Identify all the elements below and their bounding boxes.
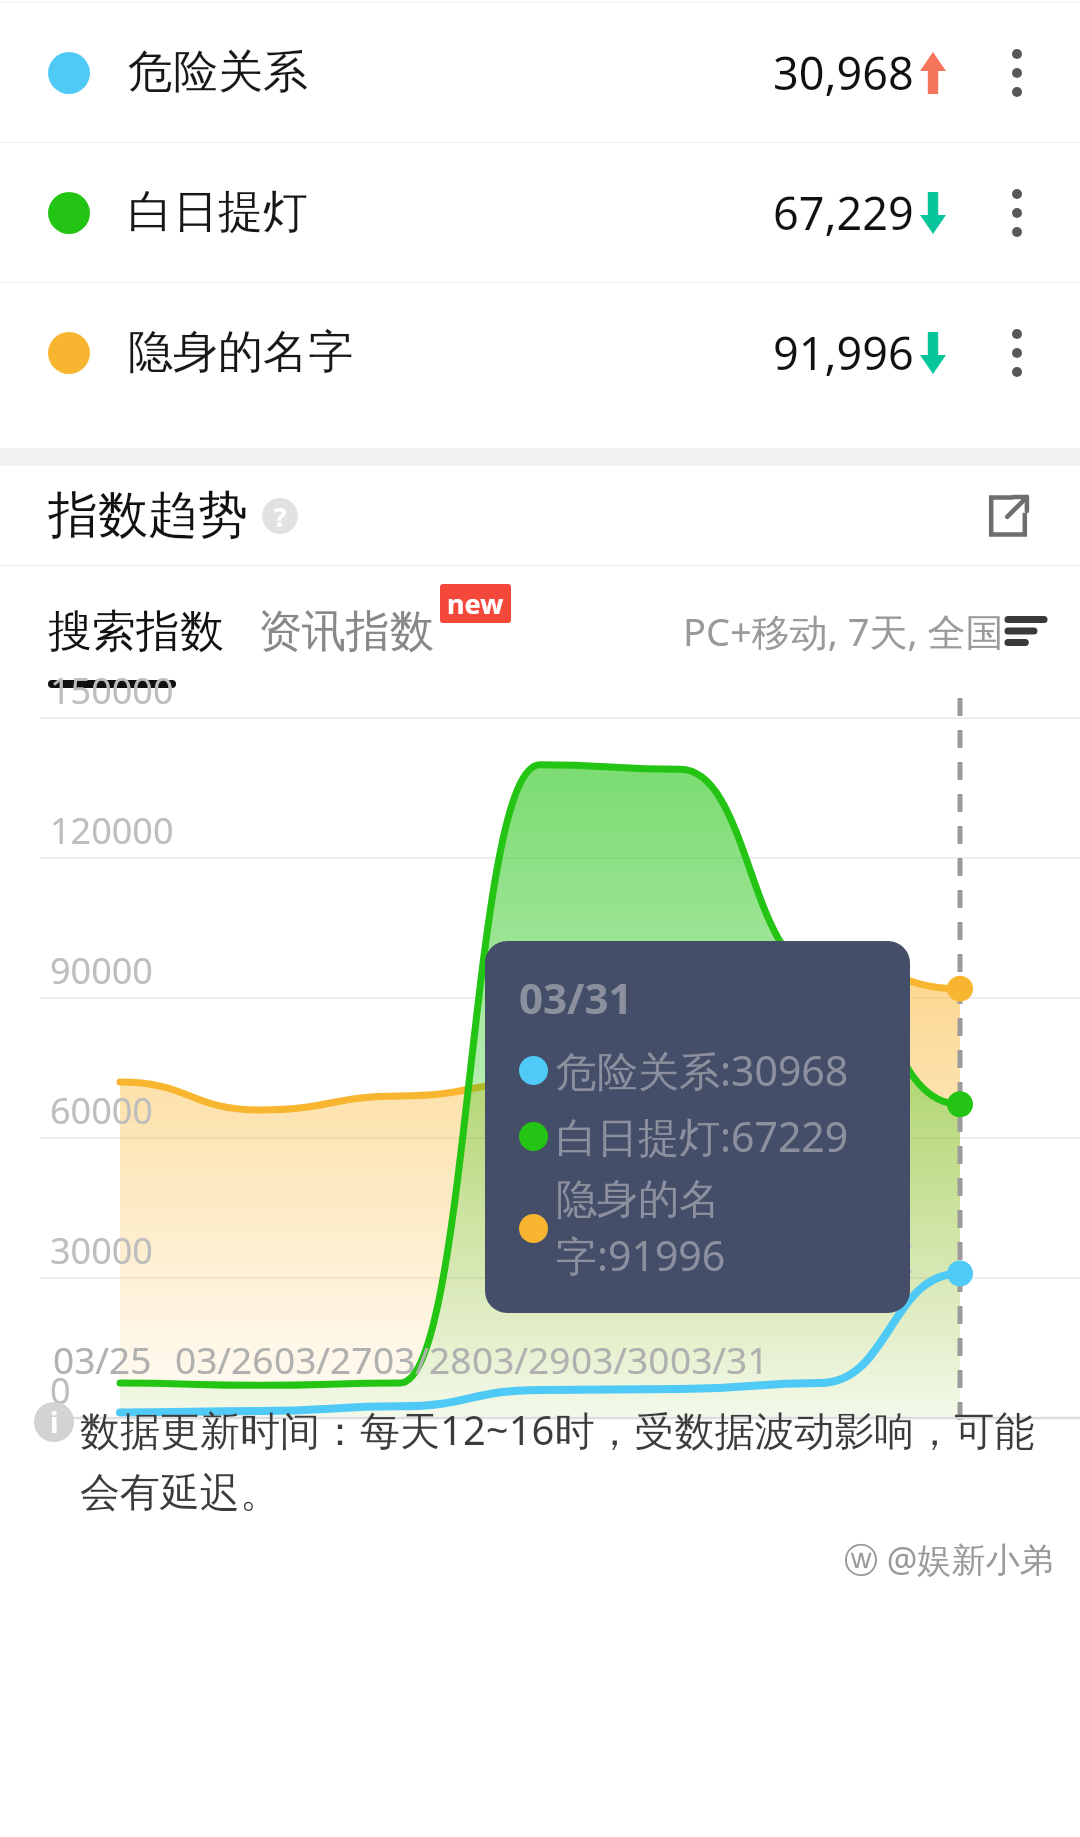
staticText: 资讯指数 (258, 604, 434, 659)
staticText: new (447, 585, 504, 622)
staticText: 03/31 (670, 1334, 769, 1384)
staticText: 隐身的名字:91996 (556, 1174, 886, 1283)
staticText: 隐身的名字 (128, 324, 353, 381)
staticText: 03/30 (571, 1334, 670, 1384)
button[interactable]: 资讯指数 (258, 586, 434, 677)
staticText: i (50, 1403, 59, 1441)
staticText: 30000 (50, 1226, 153, 1275)
button[interactable]: PC+移动, 7天, 全国 (683, 605, 1044, 657)
staticText: 03/31 (519, 969, 633, 1026)
staticText: 03/27 (274, 1334, 373, 1384)
staticText: 120000 (50, 806, 174, 855)
staticText: 30,968 (773, 42, 914, 103)
button[interactable]: 搜索指数 (48, 586, 224, 677)
staticText: 白日提灯:67229 (556, 1108, 849, 1164)
staticText: 危险关系:30968 (556, 1042, 849, 1098)
button[interactable]: 隐身的名字 (0, 283, 1080, 422)
staticText: 03/28 (373, 1334, 472, 1384)
staticText: 03/29 (472, 1334, 571, 1384)
button[interactable]: 白日提灯 (0, 143, 1080, 282)
button[interactable]: More options (990, 318, 1044, 388)
staticText: 搜索指数 (48, 604, 224, 659)
button[interactable]: More options (990, 38, 1044, 108)
button[interactable]: Open external (980, 488, 1036, 544)
staticText: 90000 (50, 946, 153, 995)
staticText: 0 (50, 1366, 71, 1415)
staticText: PC+移动, 7天, 全国 (683, 605, 1004, 657)
staticText: 60000 (50, 1086, 153, 1135)
staticText: 03/25 (53, 1334, 152, 1384)
staticText: ⓦ @娱新小弟 (844, 1536, 1054, 1582)
staticText: 150000 (50, 666, 174, 715)
staticText: 白日提灯 (128, 184, 308, 241)
staticText: 指数趋势 (48, 484, 248, 547)
staticText: 数据更新时间：每天12~16时，受数据波动影响，可能会有延迟。 (80, 1402, 1044, 1518)
staticText: 67,229 (773, 182, 914, 243)
staticText: ? (274, 499, 287, 534)
staticText: @百度指数 (718, 1226, 914, 1281)
button[interactable]: Help (262, 498, 298, 534)
button[interactable]: 危险关系 (0, 3, 1080, 142)
staticText: 91,996 (773, 322, 914, 383)
staticText: 03/26 (175, 1334, 274, 1384)
staticText: 危险关系 (128, 44, 308, 101)
button[interactable]: More options (990, 178, 1044, 248)
